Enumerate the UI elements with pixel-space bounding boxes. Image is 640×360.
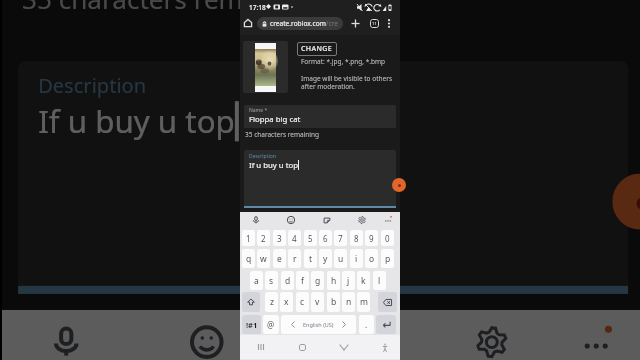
button[interactable]: v [311, 292, 324, 312]
button[interactable]: 1 [242, 230, 255, 246]
button[interactable]: 5 [304, 230, 317, 246]
button[interactable]: Settings [464, 314, 520, 360]
staticText: /cre [326, 19, 338, 28]
staticText: u [338, 253, 344, 265]
button[interactable]: Scroll to top [392, 178, 406, 192]
staticText: g [315, 275, 321, 287]
button[interactable]: Tabs, 11 open [367, 16, 381, 30]
button[interactable]: t [304, 249, 317, 268]
button[interactable]: r [288, 249, 301, 268]
button[interactable]: Name * [244, 105, 396, 128]
button[interactable]: Description [244, 150, 396, 208]
button[interactable]: e [273, 249, 286, 268]
button[interactable]: Stickers [323, 314, 379, 360]
button[interactable]: x [280, 292, 293, 312]
staticText: d [285, 275, 291, 287]
button[interactable]: More options [568, 314, 624, 360]
button[interactable]: Voice input [249, 213, 263, 227]
button[interactable]: f [296, 271, 309, 290]
button[interactable]: w [257, 249, 270, 268]
button[interactable]: i [350, 249, 363, 268]
button[interactable]: b [327, 292, 340, 312]
button[interactable]: 6 [319, 230, 332, 246]
button[interactable]: d [281, 271, 294, 290]
button[interactable]: m [357, 292, 370, 312]
button[interactable]: Emoji [179, 314, 235, 360]
staticText: n [346, 296, 352, 308]
staticText: w [260, 253, 267, 265]
staticText: Floppa big cat [249, 114, 301, 125]
staticText: 6 [323, 233, 328, 244]
staticText: 1 [246, 233, 251, 244]
button[interactable]: u [334, 249, 347, 268]
button[interactable]: 4 [288, 230, 301, 246]
staticText: c [300, 296, 305, 308]
staticText: 35 characters remaining [245, 130, 320, 139]
staticText: s [269, 275, 274, 287]
button[interactable]: 8 [350, 230, 363, 246]
staticText: j [347, 275, 350, 287]
button[interactable]: Space, English (US) [281, 315, 356, 334]
button[interactable]: Emoji [284, 213, 298, 227]
button[interactable]: create.roblox.com [257, 17, 343, 30]
button[interactable]: z [265, 292, 278, 312]
button[interactable]: o [365, 249, 378, 268]
button[interactable]: Shift [242, 292, 260, 312]
staticText: English (US) [303, 321, 334, 328]
button[interactable]: 3 [273, 230, 286, 246]
staticText: 11 [372, 21, 377, 27]
button[interactable]: Hide keyboard [337, 340, 351, 354]
button[interactable]: Backspace [378, 292, 397, 312]
button[interactable]: Settings [355, 213, 369, 227]
button[interactable]: . [359, 315, 374, 334]
button[interactable]: Image preview [243, 41, 288, 93]
staticText: Image will be visible to others [301, 74, 392, 83]
button[interactable]: 2 [257, 230, 270, 246]
staticText: b [331, 296, 337, 308]
staticText: 7 [338, 233, 343, 244]
button[interactable]: 9 [365, 230, 378, 246]
button[interactable]: l [373, 271, 386, 290]
button[interactable]: h [327, 271, 340, 290]
button[interactable]: j [342, 271, 355, 290]
staticText: k [361, 275, 366, 287]
button[interactable]: Scroll to top [612, 173, 640, 230]
button[interactable]: More options [382, 16, 396, 30]
staticText: 8 [354, 233, 359, 244]
button[interactable]: CHANGE [297, 42, 337, 56]
button[interactable]: Home [295, 340, 309, 354]
staticText: l [378, 275, 381, 287]
staticText: 0 [385, 233, 390, 244]
staticText: If u buy u top [38, 101, 235, 145]
staticText: Name * [249, 107, 268, 114]
staticText: a [254, 275, 259, 287]
button[interactable]: Voice input [38, 314, 94, 360]
staticText: p [385, 253, 391, 265]
staticText: CHANGE [301, 44, 333, 54]
button[interactable]: Recents [254, 340, 268, 354]
button[interactable]: New tab [348, 16, 362, 30]
button[interactable]: @ [263, 315, 279, 334]
button[interactable]: More options [381, 213, 395, 227]
button[interactable]: n [342, 292, 355, 312]
button[interactable]: Description [18, 61, 628, 294]
staticText: Description [38, 73, 146, 101]
button[interactable]: a [250, 271, 263, 290]
button[interactable]: Home [241, 16, 255, 30]
button[interactable]: g [311, 271, 324, 290]
button[interactable]: p [381, 249, 394, 268]
button[interactable]: k [357, 271, 370, 290]
button[interactable]: 7 [334, 230, 347, 246]
button[interactable]: Stickers [320, 213, 334, 227]
staticText: y [323, 253, 328, 265]
button[interactable]: s [265, 271, 278, 290]
button[interactable]: q [242, 249, 255, 268]
button[interactable]: !#1 [242, 315, 261, 334]
button[interactable]: Enter [376, 315, 396, 334]
staticText: h [331, 275, 337, 287]
button[interactable]: 0 [381, 230, 394, 246]
staticText: Format: *.jpg, *.png, *.bmp [301, 57, 386, 66]
button[interactable]: Accessibility [378, 340, 392, 354]
button[interactable]: c [296, 292, 309, 312]
button[interactable]: y [319, 249, 332, 268]
